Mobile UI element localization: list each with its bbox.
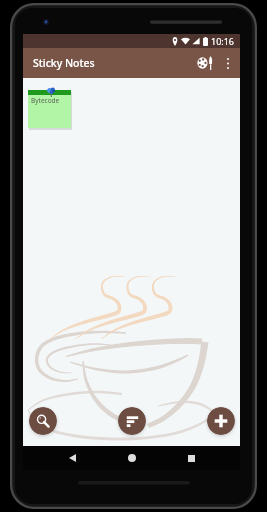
- button[interactable]: More options: [218, 53, 238, 73]
- button[interactable]: Search: [29, 407, 57, 435]
- button[interactable]: Change theme: [192, 50, 218, 76]
- button[interactable]: Back: [61, 447, 83, 469]
- button[interactable]: Bytecode: [28, 90, 71, 128]
- staticText: 10:16: [211, 35, 235, 47]
- staticText: Bytecode: [31, 96, 60, 105]
- button[interactable]: Add note: [207, 407, 235, 435]
- button[interactable]: Recent apps: [180, 447, 202, 469]
- staticText: Sticky Notes: [33, 56, 95, 70]
- button[interactable]: Sort notes: [118, 407, 146, 435]
- button[interactable]: Home: [121, 447, 143, 469]
